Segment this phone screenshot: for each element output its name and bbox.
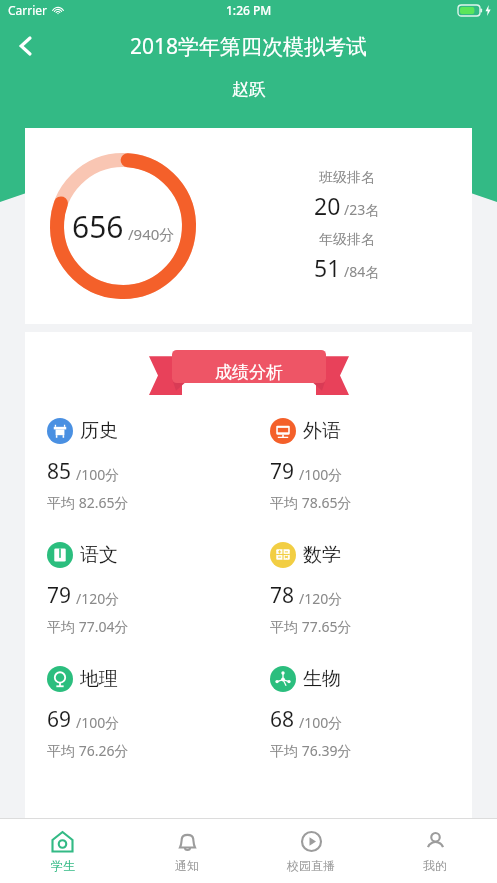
button[interactable]: 656 bbox=[25, 128, 472, 324]
staticText: 51 bbox=[314, 252, 341, 283]
staticText: 79 bbox=[47, 581, 72, 610]
staticText: /84名 bbox=[344, 262, 380, 281]
staticText: /23名 bbox=[344, 200, 380, 219]
button[interactable]: 语文 bbox=[47, 542, 248, 636]
staticText: Carrier bbox=[8, 2, 48, 18]
staticText: 平均 77.04分 bbox=[47, 617, 129, 636]
staticText: 656 bbox=[72, 206, 124, 247]
staticText: 通知 bbox=[175, 858, 199, 873]
staticText: 79 bbox=[270, 457, 295, 486]
staticText: 平均 76.39分 bbox=[270, 741, 352, 760]
staticText: 2018学年第四次模拟考试 bbox=[130, 32, 368, 61]
staticText: 外语 bbox=[303, 419, 341, 443]
button[interactable]: Back bbox=[4, 24, 48, 68]
staticText: 平均 76.26分 bbox=[47, 741, 129, 760]
button[interactable]: 生物 bbox=[270, 666, 472, 760]
button[interactable]: 通知 bbox=[125, 819, 249, 883]
staticText: 历史 bbox=[80, 419, 118, 443]
staticText: 20 bbox=[314, 190, 341, 221]
button[interactable]: 我的 bbox=[373, 819, 497, 883]
staticText: /120分 bbox=[76, 589, 120, 608]
staticText: 数学 bbox=[303, 543, 341, 567]
staticText: 平均 78.65分 bbox=[270, 493, 352, 512]
staticText: 平均 82.65分 bbox=[47, 493, 129, 512]
button[interactable]: 校园直播 bbox=[249, 819, 373, 883]
staticText: 赵跃 bbox=[232, 79, 266, 100]
button[interactable]: 历史 bbox=[47, 418, 248, 512]
button[interactable]: 地理 bbox=[47, 666, 248, 760]
button[interactable]: 外语 bbox=[270, 418, 472, 512]
staticText: 我的 bbox=[423, 858, 447, 873]
staticText: /100分 bbox=[299, 465, 343, 484]
staticText: 校园直播 bbox=[287, 858, 335, 873]
staticText: /120分 bbox=[299, 589, 343, 608]
staticText: 78 bbox=[270, 581, 295, 610]
button[interactable]: 数学 bbox=[270, 542, 472, 636]
staticText: /100分 bbox=[299, 713, 343, 732]
staticText: 1:26 PM bbox=[226, 2, 272, 18]
staticText: 68 bbox=[270, 705, 295, 734]
staticText: /100分 bbox=[76, 713, 120, 732]
button[interactable]: 学生 bbox=[0, 819, 125, 883]
staticText: /100分 bbox=[76, 465, 120, 484]
staticText: 年级排名 bbox=[319, 231, 375, 249]
staticText: 语文 bbox=[80, 543, 118, 567]
staticText: 平均 77.65分 bbox=[270, 617, 352, 636]
staticText: 班级排名 bbox=[319, 169, 375, 187]
staticText: 85 bbox=[47, 457, 72, 486]
staticText: 生物 bbox=[303, 667, 341, 691]
staticText: 成绩分析 bbox=[215, 362, 283, 383]
staticText: 69 bbox=[47, 705, 72, 734]
staticText: 地理 bbox=[80, 667, 118, 691]
staticText: 学生 bbox=[51, 858, 75, 873]
staticText: /940分 bbox=[128, 224, 175, 244]
